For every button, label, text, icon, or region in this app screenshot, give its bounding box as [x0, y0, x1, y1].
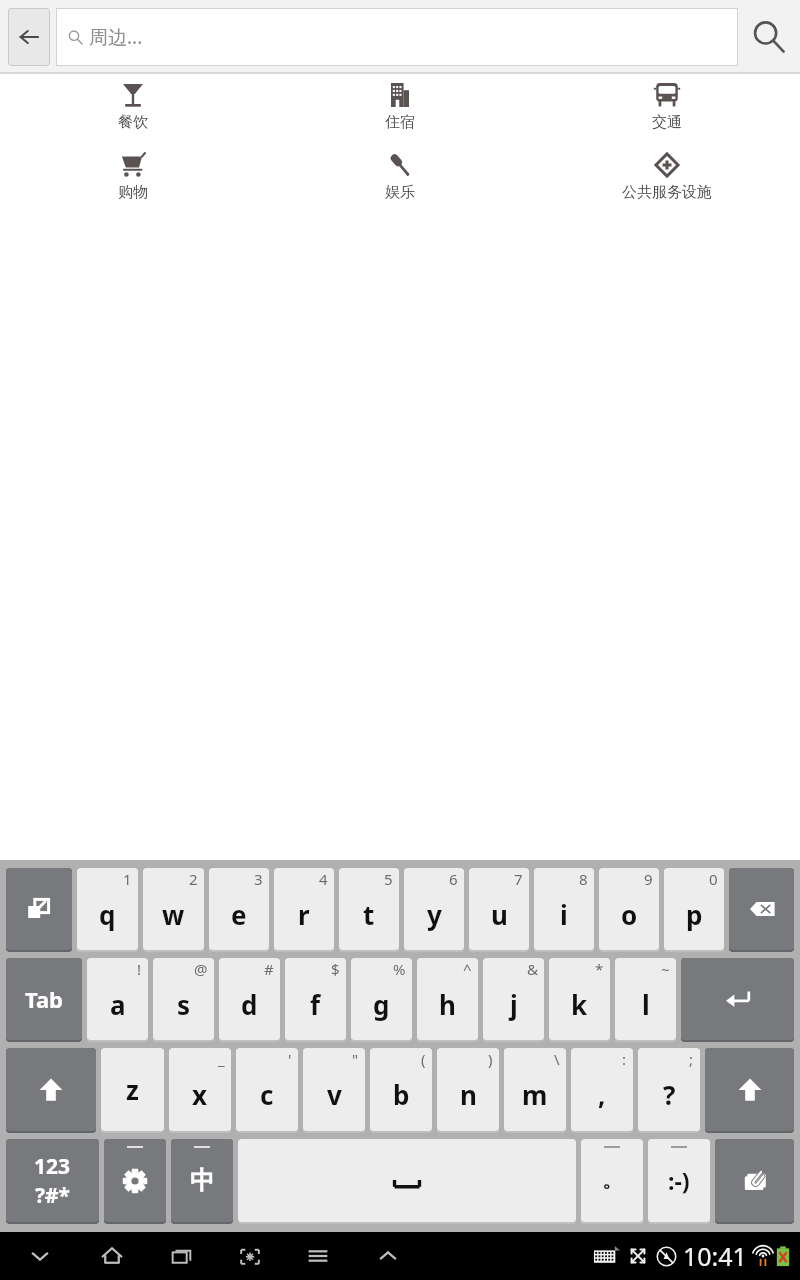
- staticText: ): [488, 1049, 493, 1069]
- button[interactable]: u: [469, 868, 529, 950]
- button[interactable]: 周边...: [56, 8, 738, 66]
- staticText: _: [218, 1049, 225, 1069]
- button[interactable]: Key: [6, 1048, 96, 1131]
- button[interactable]: ?: [638, 1048, 700, 1131]
- staticText: 8: [579, 869, 588, 889]
- staticText: k: [571, 987, 588, 1022]
- button[interactable]: l: [615, 958, 676, 1040]
- staticText: *: [595, 959, 604, 979]
- button[interactable]: m: [504, 1048, 566, 1131]
- staticText: :: [622, 1049, 627, 1069]
- button[interactable]: 交通: [533, 74, 800, 144]
- button[interactable]: :-): [648, 1139, 710, 1222]
- staticText: 公共服务设施: [622, 183, 712, 202]
- button[interactable]: Key: [6, 868, 72, 950]
- button[interactable]: Recents: [160, 1234, 204, 1278]
- staticText: %: [393, 959, 406, 979]
- button[interactable]: e: [209, 868, 269, 950]
- staticText: q: [99, 897, 116, 932]
- staticText: Tab: [25, 984, 64, 1014]
- staticText: 娱乐: [385, 183, 415, 202]
- button[interactable]: z: [101, 1048, 164, 1131]
- button[interactable]: Key: [238, 1139, 576, 1222]
- button[interactable]: x: [169, 1048, 231, 1131]
- button[interactable]: f: [285, 958, 346, 1040]
- staticText: ?: [663, 1077, 676, 1112]
- staticText: !: [137, 959, 142, 979]
- staticText: z: [126, 1072, 139, 1107]
- staticText: w: [162, 897, 185, 932]
- staticText: 餐饮: [118, 113, 148, 132]
- button[interactable]: s: [153, 958, 214, 1040]
- button[interactable]: o: [599, 868, 659, 950]
- button[interactable]: y: [404, 868, 464, 950]
- button[interactable]: Menu: [296, 1234, 340, 1278]
- staticText: 123: [34, 1152, 71, 1181]
- button[interactable]: b: [370, 1048, 432, 1131]
- button[interactable]: Search: [746, 14, 792, 60]
- staticText: p: [686, 897, 703, 932]
- button[interactable]: 购物: [0, 144, 266, 214]
- staticText: 10:41: [683, 1239, 747, 1273]
- staticText: s: [177, 987, 191, 1022]
- button[interactable]: n: [437, 1048, 499, 1131]
- staticText: ^: [463, 959, 472, 979]
- staticText: #: [264, 959, 274, 979]
- button[interactable]: q: [77, 868, 138, 950]
- button[interactable]: i: [534, 868, 594, 950]
- staticText: ;: [689, 1049, 694, 1069]
- button[interactable]: d: [219, 958, 280, 1040]
- staticText: u: [491, 897, 508, 932]
- button[interactable]: Back: [8, 8, 50, 66]
- button[interactable]: w: [143, 868, 204, 950]
- staticText: 2: [189, 869, 198, 889]
- staticText: 3: [254, 869, 263, 889]
- button[interactable]: a: [87, 958, 148, 1040]
- button[interactable]: 娱乐: [266, 144, 533, 214]
- button[interactable]: ,: [571, 1048, 633, 1131]
- button[interactable]: g: [351, 958, 412, 1040]
- button[interactable]: Key: [715, 1139, 794, 1222]
- staticText: r: [298, 897, 310, 932]
- button[interactable]: Hide keyboard: [18, 1234, 62, 1278]
- staticText: 。: [602, 1168, 622, 1193]
- staticText: y: [427, 897, 442, 932]
- staticText: a: [110, 987, 126, 1022]
- button[interactable]: Tab: [6, 958, 82, 1040]
- staticText: b: [393, 1077, 410, 1112]
- button[interactable]: r: [274, 868, 334, 950]
- button[interactable]: Home: [90, 1234, 134, 1278]
- button[interactable]: 餐饮: [0, 74, 266, 144]
- button[interactable]: 住宿: [266, 74, 533, 144]
- button[interactable]: k: [549, 958, 610, 1040]
- staticText: 4: [319, 869, 328, 889]
- staticText: v: [327, 1077, 342, 1112]
- staticText: x: [192, 1077, 208, 1112]
- button[interactable]: 。: [581, 1139, 643, 1222]
- button[interactable]: 公共服务设施: [533, 144, 800, 214]
- staticText: 周边...: [89, 24, 143, 50]
- button[interactable]: 123: [6, 1139, 99, 1222]
- button[interactable]: Screenshot: [228, 1234, 272, 1278]
- button[interactable]: Expand: [366, 1234, 410, 1278]
- staticText: j: [510, 987, 518, 1022]
- button[interactable]: c: [236, 1048, 298, 1131]
- button[interactable]: h: [417, 958, 478, 1040]
- staticText: 0: [709, 869, 718, 889]
- button[interactable]: v: [303, 1048, 365, 1131]
- button[interactable]: Key: [705, 1048, 794, 1131]
- staticText: o: [621, 897, 638, 932]
- staticText: &: [527, 959, 538, 979]
- button[interactable]: t: [339, 868, 399, 950]
- button[interactable]: j: [483, 958, 544, 1040]
- staticText: f: [310, 987, 321, 1022]
- staticText: g: [373, 987, 390, 1022]
- staticText: n: [460, 1077, 477, 1112]
- button[interactable]: 中: [171, 1139, 233, 1222]
- button[interactable]: Key: [681, 958, 794, 1040]
- button[interactable]: Key: [104, 1139, 166, 1222]
- staticText: 交通: [652, 113, 682, 132]
- button[interactable]: p: [664, 868, 724, 950]
- button[interactable]: Key: [729, 868, 794, 950]
- staticText: :-): [668, 1165, 690, 1196]
